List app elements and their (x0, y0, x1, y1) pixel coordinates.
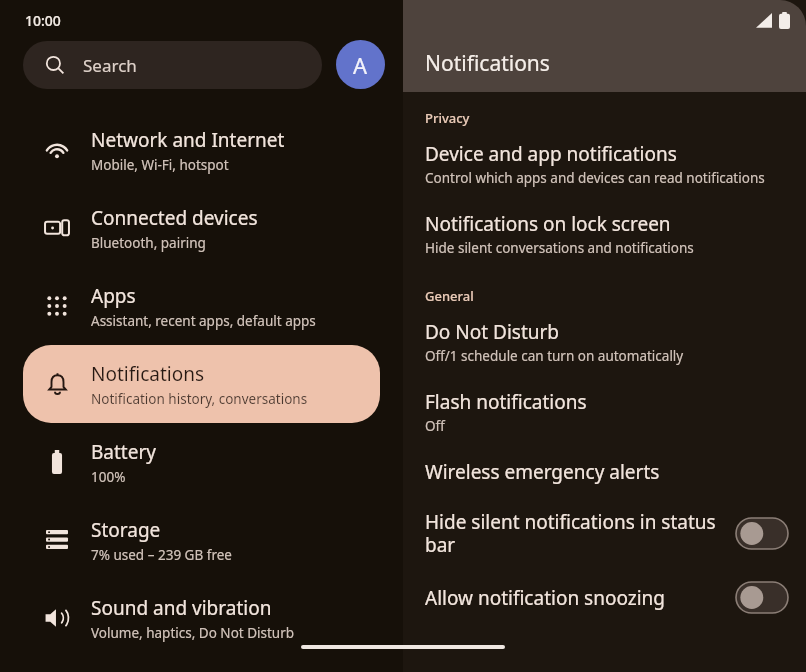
button[interactable]: Search (23, 41, 322, 89)
staticText: Flash notifications (425, 389, 587, 415)
button[interactable]: Toggle (736, 582, 788, 613)
button[interactable]: Device and app notifications (403, 129, 806, 199)
staticText: Off (425, 417, 445, 435)
button[interactable]: Network and Internet (23, 111, 380, 189)
staticText: Mobile, Wi-Fi, hotspot (91, 156, 229, 174)
staticText: Hide silent notifications in status bar (425, 509, 726, 558)
staticText: Allow notification snoozing (425, 585, 665, 611)
staticText: Volume, haptics, Do Not Disturb (91, 624, 295, 642)
staticText: Sound and vibration (91, 595, 272, 621)
staticText: Notification history, conversations (91, 390, 308, 408)
staticText: General (425, 287, 474, 305)
staticText: Assistant, recent apps, default apps (91, 312, 316, 330)
staticText: 10:00 (25, 11, 61, 30)
staticText: Notifications on lock screen (425, 211, 671, 237)
staticText: Privacy (425, 109, 470, 127)
button[interactable]: Sound and vibration (23, 579, 380, 657)
staticText: Hide silent conversations and notificati… (425, 239, 694, 257)
staticText: Network and Internet (91, 127, 285, 153)
staticText: 7% used – 239 GB free (91, 546, 232, 564)
staticText: Do Not Disturb (425, 319, 560, 345)
staticText: Control which apps and devices can read … (425, 169, 765, 187)
staticText: Connected devices (91, 205, 258, 231)
button[interactable]: Account (336, 40, 385, 89)
button[interactable]: Apps (23, 267, 380, 345)
button[interactable]: Hide silent notifications in status bar (403, 497, 806, 570)
staticText: Search (83, 54, 137, 77)
staticText: Device and app notifications (425, 141, 677, 167)
staticText: Wireless emergency alerts (425, 459, 660, 485)
staticText: A (353, 50, 368, 80)
button[interactable]: Flash notifications (403, 377, 806, 447)
staticText: Notifications (91, 361, 205, 387)
button[interactable]: Battery (23, 423, 380, 501)
button[interactable]: Allow notification snoozing (403, 570, 806, 625)
staticText: Battery (91, 439, 156, 465)
staticText: 100% (91, 468, 126, 486)
button[interactable]: Storage (23, 501, 380, 579)
button[interactable]: Do Not Disturb (403, 307, 806, 377)
staticText: Apps (91, 283, 136, 309)
button[interactable]: Connected devices (23, 189, 380, 267)
staticText: Bluetooth, pairing (91, 234, 206, 252)
other: Search (45, 55, 65, 75)
staticText: Off/1 schedule can turn on automatically (425, 347, 684, 365)
button[interactable]: Notifications (23, 345, 380, 423)
staticText: Storage (91, 517, 161, 543)
button[interactable]: Wireless emergency alerts (403, 447, 806, 497)
button[interactable]: Notifications on lock screen (403, 199, 806, 269)
staticText: Notifications (425, 49, 550, 78)
button[interactable]: Toggle (736, 518, 788, 549)
